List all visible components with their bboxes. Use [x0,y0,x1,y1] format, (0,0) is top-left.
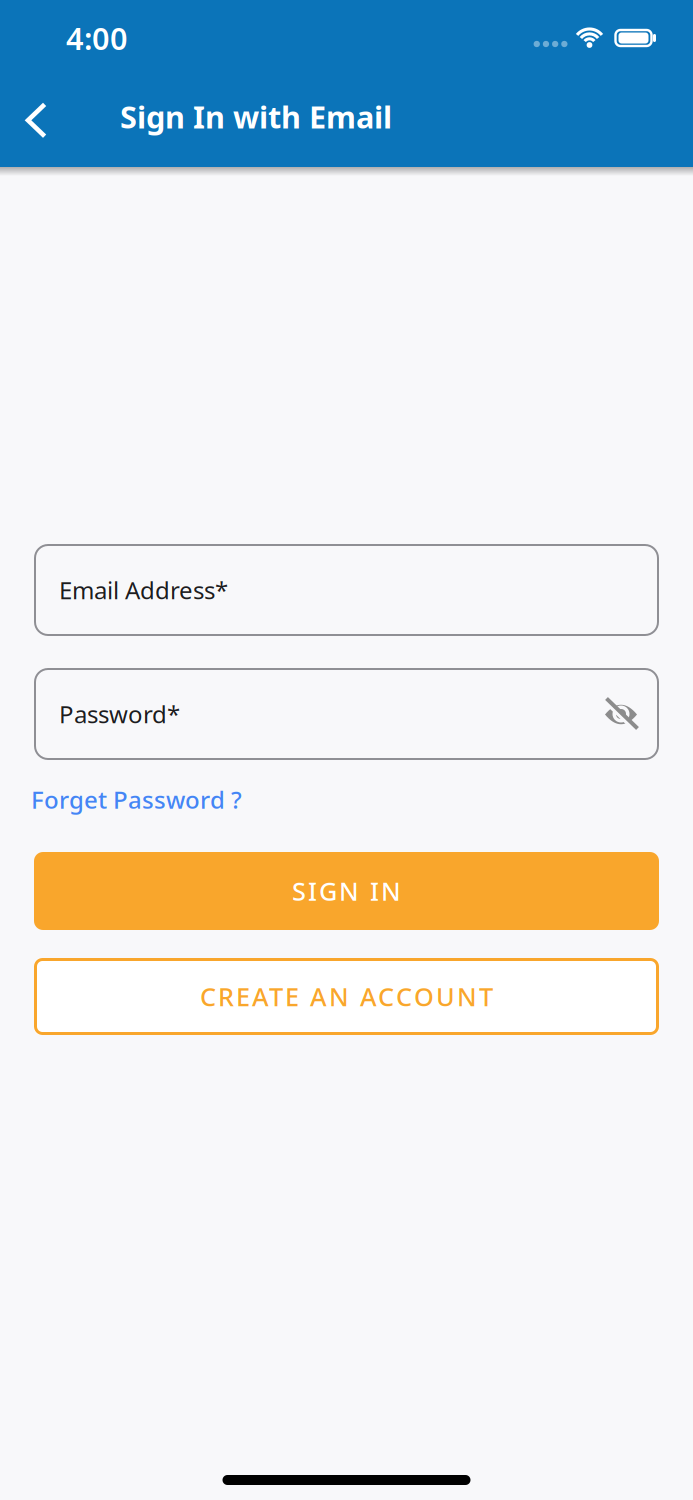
button[interactable]: CREATE AN ACCOUNT [0,958,693,1035]
button[interactable]: Password* [0,668,693,760]
button[interactable]: Back [0,100,57,133]
staticText: Forget Password ? [31,784,242,815]
staticText: Email Address* [59,574,228,606]
staticText: CREATE AN ACCOUNT [200,980,493,1013]
button[interactable]: Email Address* [0,544,693,636]
staticText: Sign In with Email [120,96,392,137]
button[interactable]: Show password [602,697,640,731]
staticText: 4:00 [66,18,128,58]
button[interactable]: SIGN IN [0,852,693,930]
staticText: SIGN IN [292,874,401,908]
staticText: Password* [59,698,180,730]
button[interactable]: Forget Password ? [31,784,242,815]
